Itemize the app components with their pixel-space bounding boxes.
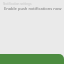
staticText: Enable push notifications now bbox=[4, 6, 62, 11]
staticText: Notification settings bbox=[3, 2, 32, 6]
button[interactable] bbox=[0, 54, 64, 64]
